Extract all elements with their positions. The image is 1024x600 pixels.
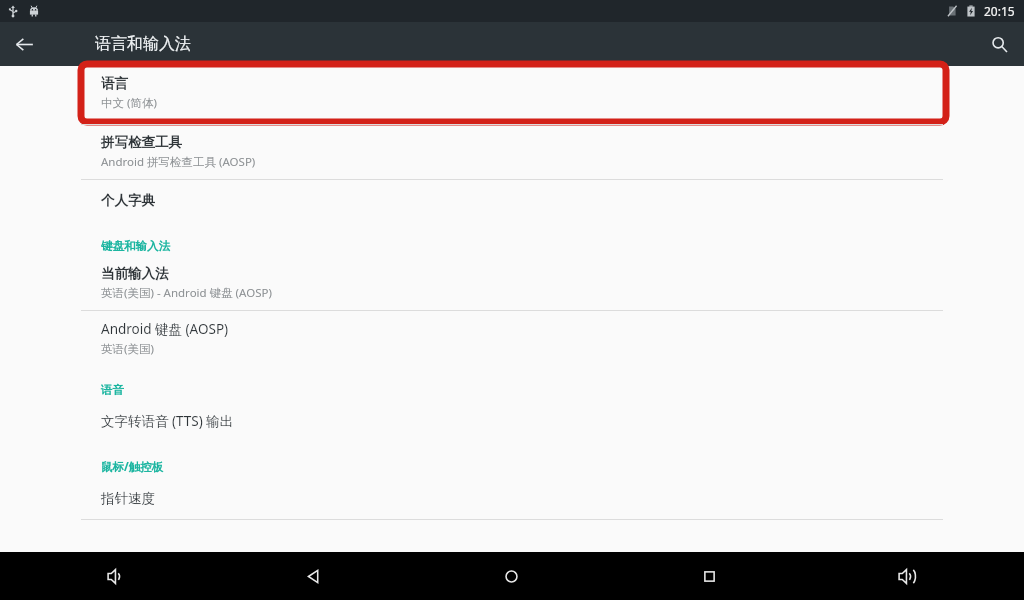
staticText: 指针速度	[101, 490, 155, 507]
button[interactable]: 当前输入法	[0, 256, 1024, 310]
button[interactable]: Home	[488, 553, 534, 599]
staticText: 语音	[101, 383, 124, 397]
button[interactable]: Volume down	[93, 553, 139, 599]
button[interactable]: 个人字典	[0, 180, 1024, 221]
button[interactable]: 拼写检查工具	[0, 125, 1024, 179]
staticText: 文字转语音 (TTS) 输出	[101, 412, 234, 430]
staticText: 语言	[101, 75, 128, 92]
staticText: 当前输入法	[101, 265, 169, 282]
staticText: 个人字典	[101, 192, 155, 209]
button[interactable]: Back	[6, 26, 42, 62]
staticText: 中文 (简体)	[101, 95, 157, 111]
staticText: 英语(美国)	[101, 341, 154, 357]
button[interactable]: Volume up	[884, 553, 930, 599]
button[interactable]: 文字转语音 (TTS) 输出	[0, 400, 1024, 441]
staticText: Android 键盘 (AOSP)	[101, 320, 229, 338]
button[interactable]: 语言	[0, 66, 1024, 120]
button[interactable]: Android 键盘 (AOSP)	[0, 311, 1024, 365]
button[interactable]: Back	[290, 553, 336, 599]
button[interactable]: Search	[981, 26, 1017, 62]
staticText: 20:15	[984, 3, 1015, 19]
button[interactable]: Recents	[686, 553, 732, 599]
staticText: 鼠标/触控板	[101, 459, 164, 475]
staticText: 英语(美国) - Android 键盘 (AOSP)	[101, 285, 272, 301]
staticText: 拼写检查工具	[101, 134, 182, 151]
button[interactable]: 指针速度	[0, 478, 1024, 519]
staticText: Android 拼写检查工具 (AOSP)	[101, 154, 256, 170]
staticText: 语言和输入法	[95, 34, 191, 54]
staticText: 键盘和输入法	[101, 239, 170, 253]
